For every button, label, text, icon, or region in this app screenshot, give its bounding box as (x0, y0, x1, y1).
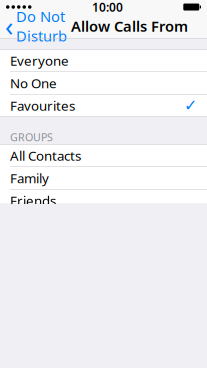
staticText: Everyone (10, 52, 69, 69)
staticText: Family (10, 169, 49, 187)
staticText: ✓ (184, 96, 197, 115)
staticText: 10:00 (92, 0, 123, 15)
staticText: All Contacts (10, 147, 81, 164)
button[interactable]: Friends (0, 189, 207, 211)
staticText: Favourites (10, 97, 75, 114)
staticText: Friends (10, 192, 56, 209)
staticText: No One (10, 74, 57, 92)
staticText: GROUPS (10, 130, 53, 144)
button[interactable]: Favourites (0, 94, 207, 116)
button[interactable]: All Contacts (0, 144, 207, 167)
button[interactable]: Everyone (0, 49, 207, 72)
staticText: ‹ (5, 8, 13, 44)
button[interactable]: No One (0, 72, 207, 94)
button[interactable]: Family (0, 167, 207, 189)
staticText: Do Not Disturb (16, 6, 67, 45)
staticText: Allow Calls From (71, 16, 188, 36)
button[interactable]: ‹ (0, 2, 67, 49)
